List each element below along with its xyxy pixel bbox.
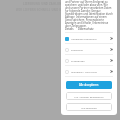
staticText: WIR LIEFERN SCHNELL UND SICHER ZU	[16, 8, 76, 12]
staticText: und Partner auf Ihrem Endgerat zu speich…	[65, 0, 113, 27]
button[interactable]: Alle akzeptieren	[66, 81, 112, 89]
staticText: Funktional	[71, 48, 83, 51]
button[interactable]: Unbedingt erforderlich	[65, 33, 113, 44]
button[interactable]: Praferenzen	[65, 55, 113, 66]
staticText: LIEFERUNG UND ZAHLUNG ZUM	[23, 2, 72, 6]
staticText: Praferenzen	[71, 59, 85, 62]
other: Expand	[110, 70, 113, 73]
staticText: Unbedingt erforderlich	[71, 37, 97, 40]
staticText: Alle akzeptieren	[79, 83, 99, 87]
button[interactable]: Datenschutz	[78, 27, 94, 31]
other: Expand	[110, 37, 113, 40]
button[interactable]: Funktional	[65, 44, 113, 55]
button[interactable]: Details	[65, 27, 74, 31]
staticText: Nur Auswahl akzeptieren	[74, 95, 104, 98]
staticText: Alle ablehnen	[81, 106, 97, 109]
other: Expand	[110, 59, 113, 62]
button[interactable]: Marketing / Third Party	[65, 66, 113, 77]
staticText: Marketing / Third Party	[71, 70, 97, 73]
other: Expand	[110, 48, 113, 51]
button[interactable]: Nur Auswahl akzeptieren	[66, 92, 112, 100]
button[interactable]: Alle ablehnen	[66, 103, 112, 111]
